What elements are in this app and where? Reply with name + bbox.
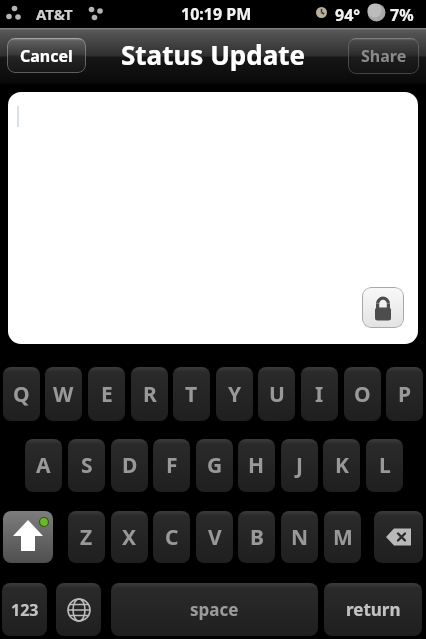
staticText: M <box>333 523 353 552</box>
staticText: Cancel <box>20 45 73 67</box>
staticText: space <box>190 598 239 621</box>
button[interactable]: A <box>25 439 62 492</box>
button[interactable]: S <box>68 439 105 492</box>
button[interactable]: Share <box>348 38 419 74</box>
staticText: I <box>315 380 324 409</box>
button[interactable]: R <box>131 367 168 421</box>
staticText: F <box>166 451 178 480</box>
button[interactable]: J <box>281 439 318 492</box>
staticText: 10:19 PM <box>181 3 252 25</box>
staticText: X <box>122 523 137 552</box>
button[interactable]: H <box>238 439 275 492</box>
button[interactable]: T <box>173 367 210 421</box>
button[interactable]: M <box>324 511 361 563</box>
button[interactable]: L <box>366 439 403 492</box>
staticText: L <box>379 451 391 480</box>
staticText: C <box>165 523 179 552</box>
button[interactable]: B <box>238 511 275 563</box>
button[interactable]: D <box>111 439 148 492</box>
button[interactable]: K <box>323 439 360 492</box>
staticText: Q <box>13 380 30 409</box>
staticText: O <box>354 380 371 409</box>
staticText: P <box>398 380 412 409</box>
button[interactable]: W <box>45 367 82 421</box>
staticText: K <box>335 451 349 480</box>
staticText: Status Update <box>121 37 306 72</box>
button[interactable]: F <box>153 439 190 492</box>
staticText: T <box>185 380 198 409</box>
staticText: R <box>143 380 157 409</box>
staticText: Z <box>80 523 93 552</box>
button[interactable]: C <box>153 511 190 563</box>
staticText: N <box>291 523 309 552</box>
button[interactable]: V <box>196 511 233 563</box>
button[interactable]: return <box>324 583 422 636</box>
button[interactable]: Cancel <box>7 38 86 73</box>
button[interactable]: Z <box>68 511 105 563</box>
staticText: Share <box>361 45 407 67</box>
staticText: G <box>207 451 223 480</box>
button[interactable]: Q <box>3 367 40 421</box>
button[interactable]: X <box>111 511 148 563</box>
button[interactable]: U <box>258 367 295 421</box>
button[interactable]: Y <box>216 367 253 421</box>
staticText: Y <box>228 380 242 409</box>
button[interactable] <box>362 287 404 328</box>
button[interactable] <box>56 583 101 636</box>
button[interactable] <box>8 92 418 344</box>
button[interactable]: I <box>301 367 338 421</box>
staticText: return <box>346 598 401 621</box>
button[interactable]: space <box>111 583 318 636</box>
staticText: V <box>208 523 222 552</box>
staticText: W <box>53 380 74 409</box>
button[interactable] <box>3 511 53 563</box>
button[interactable] <box>374 511 423 563</box>
staticText: 94° <box>335 4 361 26</box>
staticText: U <box>269 380 285 409</box>
staticText: D <box>122 451 138 480</box>
button[interactable]: 123 <box>2 583 47 636</box>
staticText: B <box>250 523 264 552</box>
staticText: 7% <box>390 4 414 26</box>
button[interactable]: G <box>196 439 233 492</box>
staticText: E <box>101 380 113 409</box>
staticText: H <box>248 451 265 480</box>
button[interactable]: O <box>344 367 381 421</box>
staticText: 123 <box>11 599 39 621</box>
button[interactable]: P <box>386 367 423 421</box>
staticText: S <box>81 451 93 480</box>
button[interactable]: E <box>88 367 125 421</box>
button[interactable]: N <box>281 511 318 563</box>
staticText: A <box>36 451 51 480</box>
staticText: AT&T <box>36 4 73 24</box>
staticText: J <box>296 451 303 480</box>
